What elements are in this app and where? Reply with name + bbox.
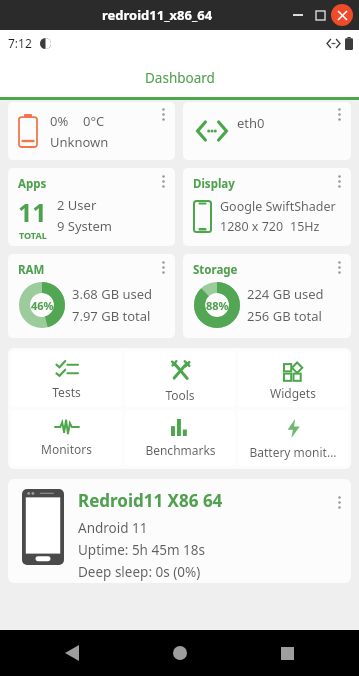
staticText: 2 User	[57, 196, 97, 214]
staticText: 46%	[31, 298, 54, 313]
staticText: 9 System	[57, 217, 112, 235]
button[interactable]: Benchmarks	[125, 410, 235, 466]
staticText: Redroid11 X86 64	[78, 489, 223, 512]
button[interactable]: RAM	[8, 254, 175, 338]
staticText: 7:12	[8, 35, 32, 51]
staticText: Google SwiftShader	[220, 198, 336, 215]
button[interactable]: Tools	[125, 351, 235, 407]
button[interactable]: Home	[160, 633, 200, 673]
staticText: 256 GB total	[247, 307, 322, 325]
staticText: Deep sleep: 0s (0%)	[78, 563, 201, 581]
button[interactable]: Back	[52, 633, 92, 673]
staticText: Dashboard	[145, 69, 215, 87]
staticText: redroid11_x86_64	[102, 6, 213, 24]
staticText: Uptime: 5h 45m 18s	[78, 541, 205, 559]
button[interactable]: Recent apps	[267, 633, 307, 673]
staticText: Unknown	[50, 133, 109, 151]
staticText: eth0	[237, 114, 265, 132]
button[interactable]: 0%	[8, 102, 175, 160]
button[interactable]: More options	[328, 491, 350, 513]
staticText: Apps	[18, 176, 47, 192]
staticText: Monitors	[41, 441, 92, 457]
button[interactable]: Battery monit...	[238, 410, 348, 466]
button[interactable]: Storage	[183, 254, 351, 338]
button[interactable]: More options	[328, 170, 350, 192]
button[interactable]: More options	[328, 103, 350, 125]
button[interactable]: Redroid11 X86 64	[8, 479, 351, 583]
button[interactable]: Minimize	[287, 4, 309, 26]
staticText: TOTAL	[19, 229, 47, 241]
staticText: 1280 x 720	[220, 218, 284, 235]
staticText: Tests	[52, 384, 81, 400]
button[interactable]: More options	[152, 170, 174, 192]
button[interactable]: Dashboard	[0, 56, 359, 100]
button[interactable]: Maximize	[309, 4, 331, 26]
button[interactable]: eth0	[183, 102, 351, 160]
button[interactable]: Monitors	[11, 410, 122, 466]
staticText: Widgets	[270, 385, 316, 401]
staticText: 7.97 GB total	[72, 307, 151, 325]
button[interactable]: More options	[328, 256, 350, 278]
staticText: 11	[18, 195, 47, 229]
staticText: Tools	[165, 387, 195, 403]
staticText: 0%	[50, 112, 69, 130]
button[interactable]: Tests	[11, 351, 122, 407]
button[interactable]: More options	[152, 256, 174, 278]
button[interactable]: Apps	[8, 168, 175, 246]
staticText: Display	[193, 176, 235, 192]
staticText: Storage	[193, 262, 238, 278]
staticText: Battery monit...	[249, 444, 337, 460]
staticText: 3.68 GB used	[72, 285, 153, 303]
staticText: 0°C	[83, 112, 105, 130]
staticText: 224 GB used	[247, 285, 324, 303]
staticText: 88%	[206, 298, 229, 313]
button[interactable]: Close	[331, 4, 353, 26]
button[interactable]: Display	[183, 168, 351, 246]
staticText: Android 11	[78, 519, 148, 537]
button[interactable]: Widgets	[238, 351, 348, 407]
button[interactable]: More options	[152, 103, 174, 125]
staticText: Benchmarks	[145, 442, 216, 458]
staticText: 15Hz	[290, 218, 320, 235]
staticText: RAM	[18, 262, 45, 278]
